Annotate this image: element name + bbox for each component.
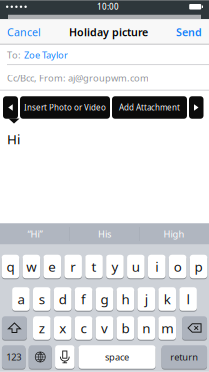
button[interactable]: v bbox=[96, 316, 113, 341]
button[interactable]: c bbox=[75, 316, 92, 341]
button[interactable]: Send bbox=[176, 25, 202, 39]
button[interactable]: a bbox=[12, 287, 30, 312]
button[interactable]: j bbox=[137, 287, 155, 312]
staticText: v bbox=[101, 319, 108, 337]
button[interactable]: Dictation bbox=[55, 345, 74, 370]
staticText: z bbox=[39, 319, 45, 337]
staticText: Zoe Taylor bbox=[24, 49, 68, 61]
staticText: To: bbox=[7, 49, 21, 61]
button[interactable]: w bbox=[23, 255, 40, 279]
button[interactable]: Scroll right bbox=[189, 96, 203, 119]
staticText: Send bbox=[176, 25, 202, 39]
button[interactable]: Cancel bbox=[7, 25, 41, 39]
button[interactable]: p bbox=[190, 255, 207, 279]
staticText: t bbox=[92, 258, 97, 275]
staticText: c bbox=[81, 319, 87, 337]
staticText: i bbox=[155, 258, 158, 275]
button[interactable]: h bbox=[117, 287, 134, 312]
staticText: space bbox=[105, 351, 129, 363]
button[interactable]: High bbox=[140, 223, 209, 245]
button[interactable]: Add Attachment bbox=[112, 96, 187, 119]
staticText: m bbox=[161, 319, 173, 337]
button[interactable]: t bbox=[85, 255, 103, 279]
button[interactable]: u bbox=[127, 255, 145, 279]
staticText: Cc/Bcc, From: aj@groupwm.com bbox=[7, 72, 149, 84]
staticText: y bbox=[111, 258, 118, 275]
button[interactable]: His bbox=[70, 223, 139, 245]
button[interactable]: r bbox=[64, 255, 82, 279]
button[interactable]: k bbox=[158, 287, 176, 312]
button[interactable]: l bbox=[179, 287, 197, 312]
staticText: Hi bbox=[7, 130, 20, 148]
staticText: x bbox=[59, 319, 66, 337]
staticText: g bbox=[100, 290, 108, 308]
button[interactable]: “Hi” bbox=[0, 223, 69, 245]
button[interactable]: Scroll left bbox=[3, 96, 18, 119]
button[interactable]: o bbox=[169, 255, 186, 279]
staticText: Insert Photo or Video bbox=[24, 102, 106, 113]
staticText: b bbox=[121, 319, 129, 337]
staticText: e bbox=[48, 258, 56, 275]
staticText: r bbox=[70, 258, 76, 275]
button[interactable]: z bbox=[33, 316, 51, 341]
button[interactable]: y bbox=[106, 255, 124, 279]
button[interactable]: Cc/Bcc, From: aj@groupwm.com bbox=[0, 65, 209, 91]
button[interactable]: g bbox=[96, 287, 113, 312]
staticText: 10:00 bbox=[97, 1, 119, 12]
staticText: d bbox=[59, 290, 67, 308]
staticText: Add Attachment bbox=[119, 102, 180, 113]
button[interactable]: b bbox=[117, 316, 134, 341]
staticText: j bbox=[145, 290, 148, 308]
staticText: u bbox=[132, 258, 140, 275]
button[interactable]: Shift bbox=[2, 316, 27, 341]
staticText: 123 bbox=[6, 351, 21, 363]
button[interactable]: return bbox=[162, 345, 207, 370]
button[interactable]: space bbox=[78, 345, 155, 370]
staticText: q bbox=[6, 258, 14, 275]
staticText: return bbox=[170, 351, 198, 363]
button[interactable]: Delete bbox=[182, 316, 207, 341]
staticText: n bbox=[142, 319, 150, 337]
button[interactable]: Next keyboard bbox=[29, 345, 52, 370]
button[interactable]: i bbox=[148, 255, 166, 279]
staticText: Holiday picture bbox=[69, 25, 148, 39]
staticText: p bbox=[195, 258, 203, 275]
staticText: a bbox=[17, 290, 24, 308]
staticText: h bbox=[121, 290, 129, 308]
staticText: “Hi” bbox=[27, 228, 42, 240]
button[interactable]: q bbox=[2, 255, 19, 279]
staticText: s bbox=[39, 290, 45, 308]
button[interactable]: x bbox=[54, 316, 71, 341]
staticText: l bbox=[187, 290, 190, 308]
staticText: His bbox=[98, 228, 111, 240]
button[interactable]: 123 bbox=[2, 345, 25, 370]
button[interactable]: To: bbox=[0, 45, 209, 65]
staticText: k bbox=[164, 290, 171, 308]
staticText: f bbox=[81, 290, 86, 308]
staticText: Cancel bbox=[7, 25, 41, 39]
button[interactable]: n bbox=[137, 316, 155, 341]
button[interactable]: Insert Photo or Video bbox=[20, 96, 110, 119]
staticText: High bbox=[164, 228, 185, 240]
staticText: o bbox=[174, 258, 182, 275]
button[interactable]: e bbox=[43, 255, 61, 279]
staticText: w bbox=[26, 258, 36, 275]
button[interactable]: m bbox=[158, 316, 176, 341]
button[interactable]: d bbox=[54, 287, 71, 312]
button[interactable]: f bbox=[75, 287, 92, 312]
button[interactable]: s bbox=[33, 287, 51, 312]
